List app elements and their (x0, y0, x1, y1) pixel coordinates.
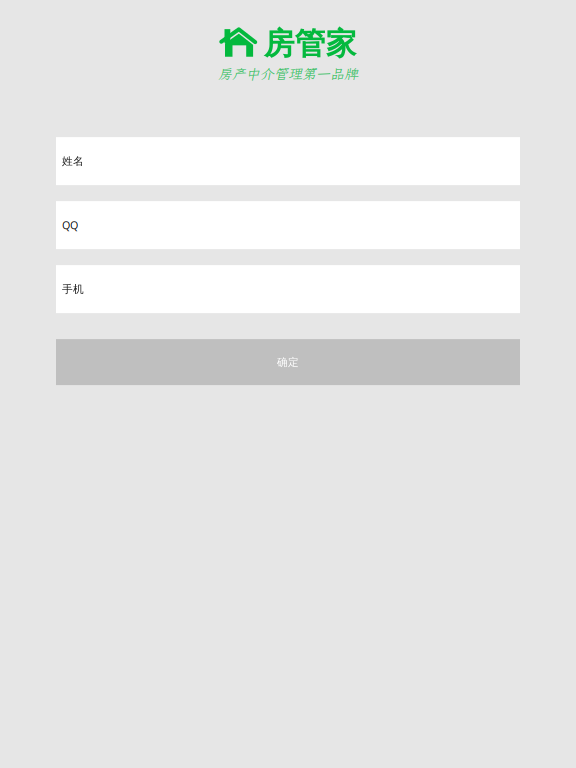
staticText: 姓名 (62, 155, 84, 168)
staticText: 房管家 (264, 25, 357, 63)
button[interactable]: QQ (56, 201, 520, 249)
staticText: 确定 (277, 356, 299, 369)
staticText: 手机 (62, 283, 84, 296)
button[interactable]: 手机 (56, 265, 520, 313)
staticText: QQ (62, 218, 78, 232)
button[interactable]: 姓名 (56, 137, 520, 185)
staticText: 房产中介管理第一品牌 (218, 65, 358, 83)
